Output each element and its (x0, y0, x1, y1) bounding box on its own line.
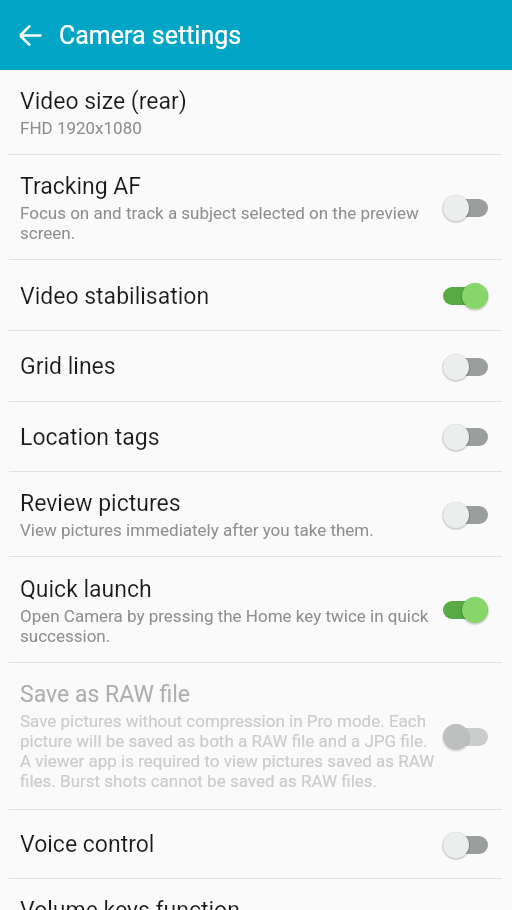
button[interactable]: Quick launch (0, 557, 512, 663)
staticText: Grid lines (20, 353, 116, 380)
button[interactable]: Volume keys function (0, 879, 512, 910)
staticText: Volume keys function (20, 897, 240, 910)
button[interactable]: Video size (rear) (0, 70, 512, 155)
button[interactable]: Video stabilisation (0, 260, 512, 331)
staticText: Camera settings (59, 21, 242, 50)
staticText: FHD 1920x1080 (20, 118, 142, 138)
staticText: View pictures immediately after you take… (20, 520, 374, 540)
button[interactable]: Tracking AF (0, 155, 512, 260)
button[interactable]: Voice control (443, 831, 488, 859)
staticText: Quick launch (20, 576, 152, 603)
staticText: Voice control (20, 831, 155, 858)
button[interactable]: Review pictures (443, 501, 488, 529)
button[interactable]: Review pictures (0, 472, 512, 557)
button[interactable]: Quick launch (443, 596, 488, 624)
button[interactable]: Video stabilisation (443, 282, 488, 310)
button[interactable]: Location tags (443, 423, 488, 451)
button[interactable]: Tracking AF (443, 194, 488, 222)
button[interactable]: Save as RAW file (443, 723, 488, 751)
staticText: Save pictures without compression in Pro… (20, 711, 438, 791)
staticText: Review pictures (20, 490, 181, 517)
button[interactable]: Voice control (0, 810, 512, 879)
button[interactable]: Location tags (0, 402, 512, 472)
button[interactable]: Save as RAW file (0, 663, 512, 810)
staticText: Open Camera by pressing the Home key twi… (20, 606, 438, 646)
button[interactable]: Back (0, 0, 59, 70)
staticText: Video stabilisation (20, 283, 210, 310)
button[interactable]: Grid lines (0, 331, 512, 402)
staticText: Location tags (20, 424, 160, 451)
staticText: Save as RAW file (20, 681, 191, 708)
staticText: Video size (rear) (20, 88, 187, 115)
button[interactable]: Grid lines (443, 353, 488, 381)
staticText: Focus on and track a subject selected on… (20, 203, 438, 243)
staticText: Tracking AF (20, 173, 142, 200)
